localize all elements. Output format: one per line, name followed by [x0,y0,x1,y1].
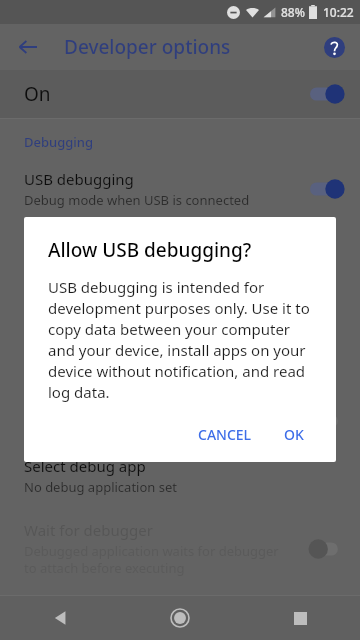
staticText: USB debugging is intended for developmen… [48,277,312,403]
button[interactable]: Back [8,27,48,67]
staticText: Debugging [24,133,94,151]
staticText: USB debugging [24,169,134,189]
staticText: Enable view attribute inspection [24,411,250,431]
staticText: CANCEL [198,425,252,444]
button[interactable]: Back [0,596,120,640]
staticText: Debug mode when USB is connected [24,191,250,209]
button[interactable]: USB debugging [0,157,360,221]
staticText: 88% [281,4,305,20]
button[interactable]: Home [120,596,240,640]
staticText: No debug application set [24,478,177,496]
staticText: Allow USB debugging? [48,237,252,263]
button[interactable]: Help [316,29,352,65]
staticText: 10:22 [323,4,354,20]
button[interactable]: On [0,70,360,118]
staticText: Developer options [64,34,231,60]
staticText: Wait for debugger [24,520,153,540]
button[interactable]: CANCEL [190,415,260,454]
staticText: On [24,81,51,107]
staticText: Select debug app [24,456,146,476]
button[interactable]: Select debug app [0,444,360,508]
button[interactable]: Enable view attribute inspection [0,398,360,444]
staticText: OK [284,425,304,444]
button[interactable]: OK [276,415,312,454]
button[interactable]: Recent apps [240,596,360,640]
